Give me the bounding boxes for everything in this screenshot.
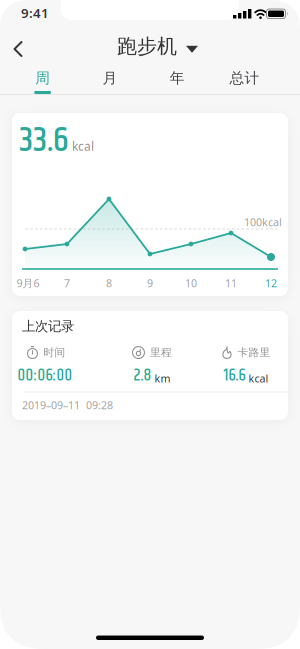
button[interactable]: 年	[143, 69, 211, 94]
staticText: 周	[35, 69, 50, 87]
staticText: 里程	[150, 346, 172, 359]
staticText: 8	[106, 276, 112, 290]
button[interactable]: 月	[76, 69, 143, 94]
staticText: 12	[265, 276, 277, 290]
staticText: 9:41	[21, 4, 49, 22]
staticText: 年	[170, 69, 185, 87]
staticText: 9月6	[16, 276, 39, 290]
staticText: 卡路里	[237, 346, 270, 359]
staticText: 上次记录	[22, 318, 74, 334]
button[interactable]: Back	[0, 30, 24, 54]
staticText: km	[154, 371, 170, 385]
staticText: 时间	[43, 346, 65, 359]
staticText: kcal	[72, 138, 94, 154]
staticText: 100kcal	[244, 215, 282, 229]
staticText: 7	[64, 276, 70, 290]
staticText: 2.8	[133, 363, 151, 388]
staticText: 00:06:00	[17, 363, 72, 388]
staticText: kcal	[248, 371, 268, 385]
staticText: 9	[147, 276, 153, 290]
staticText: 33.6	[19, 114, 69, 168]
staticText: 月	[102, 69, 117, 87]
staticText: 2019–09–11 09:28	[22, 398, 113, 412]
staticText: 总计	[229, 69, 259, 87]
button[interactable]: 跑步机	[117, 34, 198, 59]
staticText: 16.6	[223, 363, 245, 388]
staticText: 10	[185, 276, 197, 290]
staticText: 11	[225, 276, 237, 290]
button[interactable]: 周	[9, 69, 76, 94]
staticText: 跑步机	[117, 34, 177, 59]
button[interactable]: 总计	[211, 69, 278, 94]
